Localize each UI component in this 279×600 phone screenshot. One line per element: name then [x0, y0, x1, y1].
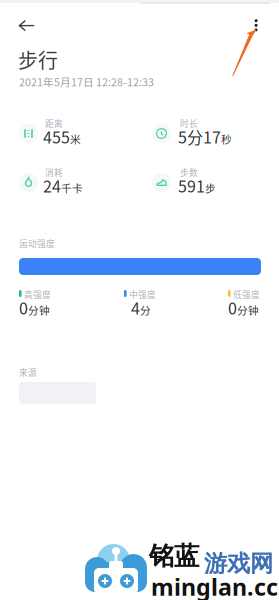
- staticText: 5分17: [178, 125, 221, 148]
- staticText: 千卡: [61, 180, 83, 196]
- staticText: 低强度: [233, 288, 260, 300]
- staticText: 分钟: [237, 302, 259, 318]
- button[interactable]: More options: [0, 0, 279, 50]
- staticText: minglan.cc: [151, 571, 278, 600]
- staticText: 时长: [180, 117, 198, 129]
- staticText: 2021年5月17日 12:28-12:33: [19, 74, 154, 89]
- staticText: 4: [131, 296, 140, 319]
- staticText: 0: [228, 296, 237, 319]
- staticText: 步行: [18, 45, 58, 74]
- staticText: 来源: [19, 366, 37, 378]
- staticText: 消耗: [45, 166, 63, 178]
- staticText: 步: [205, 180, 216, 196]
- staticText: 中强度: [129, 288, 156, 300]
- staticText: 分钟: [28, 302, 50, 318]
- staticText: 步数: [180, 166, 198, 178]
- staticText: 游戏网: [204, 549, 273, 578]
- staticText: 高强度: [24, 288, 51, 300]
- staticText: 铭蓝: [149, 540, 199, 572]
- staticText: 455: [43, 125, 70, 148]
- button[interactable]: Back: [0, 0, 279, 50]
- staticText: 591: [178, 174, 205, 197]
- staticText: 0: [19, 296, 28, 319]
- staticText: 米: [70, 131, 81, 147]
- staticText: 24: [43, 174, 61, 197]
- staticText: 运动强度: [19, 237, 55, 249]
- staticText: 距离: [45, 117, 63, 129]
- staticText: 分: [140, 302, 151, 318]
- staticText: 秒: [221, 131, 232, 147]
